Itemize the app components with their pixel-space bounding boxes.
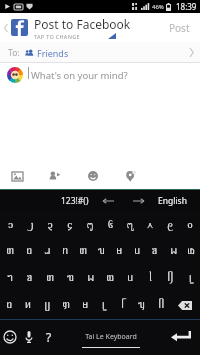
staticText: 18:39 (176, 1, 197, 12)
staticText: ᥖ (6, 246, 14, 257)
staticText: ᥦ (167, 273, 173, 284)
staticText: ᥒ (62, 246, 68, 257)
staticText: 123!#() (61, 195, 89, 207)
button[interactable]: To: (0, 42, 200, 63)
button[interactable]: ᧔ (60, 211, 80, 238)
staticText: TAP TO CHANGE (34, 33, 80, 40)
button[interactable]: ᥙ (120, 265, 140, 292)
staticText: Friends (37, 47, 69, 59)
staticText: English (158, 195, 187, 207)
staticText: ᥑ (152, 246, 158, 257)
button[interactable]: ᧓ (40, 211, 60, 238)
button[interactable]: ᥝ (19, 238, 38, 265)
button[interactable]: Backspace (170, 292, 200, 319)
staticText: ᥗ (106, 273, 114, 284)
staticText: ᧕ (87, 219, 93, 231)
button[interactable]: ᥣ (140, 265, 160, 292)
button[interactable]: Next (130, 194, 146, 208)
staticText: ᧗ (127, 219, 133, 231)
button[interactable]: Feeling (85, 168, 101, 184)
button[interactable]: ᥑ (146, 238, 164, 265)
button[interactable]: ᥝ (0, 292, 18, 319)
button[interactable]: ᧗ (120, 211, 140, 238)
button[interactable]: ᥧ (180, 265, 200, 292)
button[interactable]: Check in location (123, 168, 139, 184)
button[interactable]: Voice input (19, 319, 39, 355)
staticText: ᥖ (46, 273, 54, 284)
button[interactable]: ᥖ (0, 238, 19, 265)
staticText: ᧘ (147, 219, 153, 231)
staticText: Post to Facebook (34, 16, 131, 32)
staticText: ᥕ (87, 273, 94, 284)
staticText: ᥬ (121, 300, 124, 311)
button[interactable]: Back (0, 13, 11, 42)
button[interactable]: ᥕ (164, 238, 182, 265)
staticText: ᥝ (6, 300, 12, 311)
staticText: ᥝ (26, 246, 32, 257)
button[interactable]: Add photo (9, 168, 25, 184)
button[interactable]: ᥦ (160, 265, 180, 292)
button[interactable]: ᥛ (110, 238, 128, 265)
staticText: ᥛ (116, 246, 122, 257)
button[interactable]: ᥖ (40, 265, 60, 292)
button[interactable]: ᧕ (80, 211, 100, 238)
staticText: ᥢ (25, 300, 31, 311)
button[interactable]: ᥓ (60, 265, 80, 292)
button[interactable]: ? (39, 319, 59, 355)
button[interactable]: ᥞ (56, 292, 75, 319)
button[interactable]: ᥥ (151, 292, 170, 319)
staticText: ᥣ (149, 273, 152, 284)
staticText: ᥘ (44, 246, 51, 257)
button[interactable]: Tai Le Keyboard (59, 319, 162, 355)
button[interactable]: ᥖ (74, 238, 92, 265)
staticText: ᥥ (158, 300, 164, 311)
staticText: ᧒ (28, 219, 33, 231)
button[interactable]: ᧖ (100, 211, 120, 238)
button[interactable]: Previous (100, 194, 116, 208)
button[interactable]: ᧘ (140, 211, 160, 238)
button[interactable]: ᥡ (132, 292, 151, 319)
staticText: ᥧ (189, 273, 192, 284)
button[interactable]: ᧐ (180, 211, 200, 238)
button[interactable]: Enter (162, 319, 200, 355)
button[interactable]: ᥐ (0, 265, 20, 292)
button[interactable]: ᥕ (80, 265, 100, 292)
staticText: ᥙ (127, 273, 133, 284)
staticText: ᧙ (167, 219, 173, 231)
button[interactable]: Tag people (47, 168, 63, 184)
staticText: ᥡ (138, 300, 145, 311)
button[interactable]: Emoji (0, 319, 19, 355)
staticText: ᥕ (170, 246, 177, 257)
button[interactable]: ᧑ (0, 211, 20, 238)
staticText: 46% (152, 3, 164, 11)
staticText: ᥛ (82, 300, 88, 311)
button[interactable]: ᧙ (160, 211, 180, 238)
button[interactable]: ᧒ (20, 211, 40, 238)
button[interactable]: ᥒ (56, 238, 74, 265)
button[interactable]: ᥑ (20, 265, 40, 292)
button[interactable]: ᥩ (37, 292, 56, 319)
staticText: ? (46, 329, 52, 345)
button[interactable]: ᥢ (18, 292, 37, 319)
button[interactable]: ᥔ (92, 238, 110, 265)
button[interactable]: 123!#() (58, 193, 92, 209)
staticText: To: (8, 47, 20, 59)
staticText: ᥑ (27, 273, 33, 284)
staticText: ᧑ (8, 219, 13, 231)
button[interactable]: ᥗ (100, 265, 120, 292)
button[interactable]: ᥙ (128, 238, 146, 265)
button[interactable]: ᥧ (94, 292, 113, 319)
button[interactable]: Post (158, 13, 200, 42)
button[interactable]: ᥬ (113, 292, 132, 319)
button[interactable]: ᥚ (182, 238, 200, 265)
staticText: Tai Le Keyboard (85, 332, 137, 342)
staticText: ᥔ (98, 246, 105, 257)
button[interactable]: ᥘ (38, 238, 56, 265)
staticText: ᧔ (67, 219, 73, 231)
staticText: ᥞ (62, 300, 70, 311)
button[interactable]: ᥛ (75, 292, 94, 319)
button[interactable]: English (155, 193, 190, 209)
staticText: ᧐ (187, 219, 193, 231)
staticText: ᥓ (67, 273, 74, 284)
staticText: ᥐ (7, 273, 13, 284)
